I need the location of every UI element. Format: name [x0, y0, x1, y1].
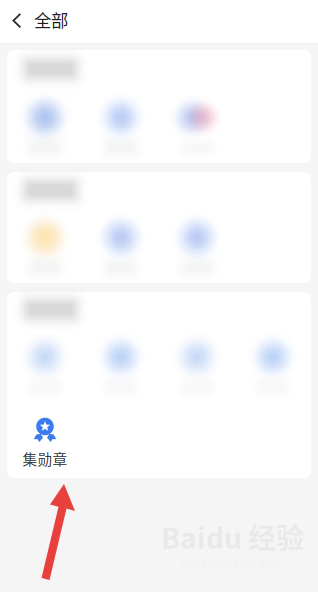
button[interactable]: 集勋章	[7, 395, 83, 471]
staticText: Baidu 经验	[161, 516, 304, 557]
staticText: 集勋章	[22, 448, 67, 469]
staticText: 全部	[34, 7, 68, 32]
button[interactable]: Back	[0, 0, 34, 43]
